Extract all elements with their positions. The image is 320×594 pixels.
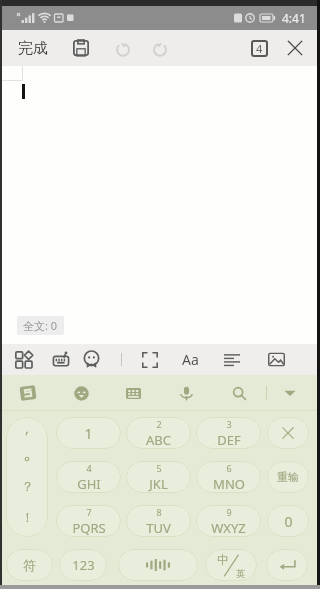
- button[interactable]: Redo: [144, 30, 176, 66]
- button[interactable]: [266, 549, 308, 581]
- button[interactable]: 7: [56, 505, 121, 537]
- button[interactable]: Emoji: [65, 377, 97, 409]
- staticText: 3: [226, 418, 232, 430]
- staticText: 重输: [277, 470, 299, 484]
- staticText: 完成: [18, 39, 48, 58]
- staticText: JKL: [149, 475, 168, 493]
- button[interactable]: 全文: 0: [17, 316, 64, 335]
- button[interactable]: Keyboard layout: [117, 377, 149, 409]
- staticText: 全文: 0: [23, 318, 58, 333]
- staticText: 2: [156, 418, 162, 430]
- button[interactable]: 3: [196, 417, 261, 449]
- staticText: 0: [284, 512, 293, 531]
- button[interactable]: 中: [205, 549, 257, 581]
- staticText: 4:41: [282, 10, 306, 26]
- staticText: 123: [72, 556, 95, 574]
- staticText: 英: [236, 568, 245, 579]
- button[interactable]: Apps: [8, 344, 38, 375]
- button[interactable]: 8: [126, 505, 191, 537]
- button[interactable]: Voice input: [170, 377, 202, 409]
- staticText: 4: [86, 462, 92, 474]
- staticText: Aa: [182, 350, 199, 369]
- button[interactable]: 符: [6, 549, 53, 581]
- button[interactable]: Sogou input: [12, 377, 44, 409]
- button[interactable]: [267, 417, 309, 449]
- staticText: 9: [226, 506, 232, 518]
- staticText: ！: [21, 509, 34, 525]
- staticText: 1: [84, 424, 93, 443]
- button[interactable]: Collapse keyboard: [274, 377, 306, 409]
- button[interactable]: [118, 549, 198, 581]
- button[interactable]: 完成: [13, 30, 53, 66]
- staticText: PQRS: [72, 519, 106, 537]
- staticText: 6: [226, 462, 232, 474]
- button[interactable]: Keyboard: [46, 344, 76, 375]
- staticText: WXYZ: [211, 519, 246, 537]
- staticText: 中: [217, 552, 229, 567]
- staticText: DEF: [217, 431, 241, 449]
- button[interactable]: Select: [135, 344, 165, 375]
- staticText: 7: [86, 506, 92, 518]
- button[interactable]: 重输: [267, 461, 309, 493]
- button[interactable]: Align: [217, 344, 247, 375]
- button[interactable]: 6: [196, 461, 261, 493]
- button[interactable]: 123: [59, 549, 107, 581]
- button[interactable]: Aa: [175, 344, 206, 375]
- button[interactable]: 2: [126, 417, 191, 449]
- button[interactable]: Close: [279, 30, 311, 66]
- button[interactable]: Search: [223, 377, 255, 409]
- button[interactable]: Image: [261, 344, 291, 375]
- staticText: ？: [21, 478, 34, 494]
- staticText: 符: [23, 557, 36, 573]
- button[interactable]: 5: [126, 461, 191, 493]
- button[interactable]: 0: [267, 505, 309, 537]
- button[interactable]: ？: [6, 417, 48, 537]
- staticText: MNO: [213, 475, 245, 493]
- staticText: TUV: [146, 519, 171, 537]
- button[interactable]: 1: [56, 417, 121, 449]
- staticText: ABC: [146, 431, 171, 449]
- staticText: GHI: [77, 475, 101, 493]
- staticText: 8: [156, 506, 162, 518]
- button[interactable]: 4: [56, 461, 121, 493]
- button[interactable]: Emoji: [76, 344, 106, 375]
- button[interactable]: Tabs: [244, 30, 274, 66]
- button[interactable]: Undo: [107, 30, 139, 66]
- staticText: 4: [256, 41, 263, 56]
- staticText: 5: [156, 462, 162, 474]
- button[interactable]: 9: [196, 505, 261, 537]
- button[interactable]: Save: [65, 30, 97, 66]
